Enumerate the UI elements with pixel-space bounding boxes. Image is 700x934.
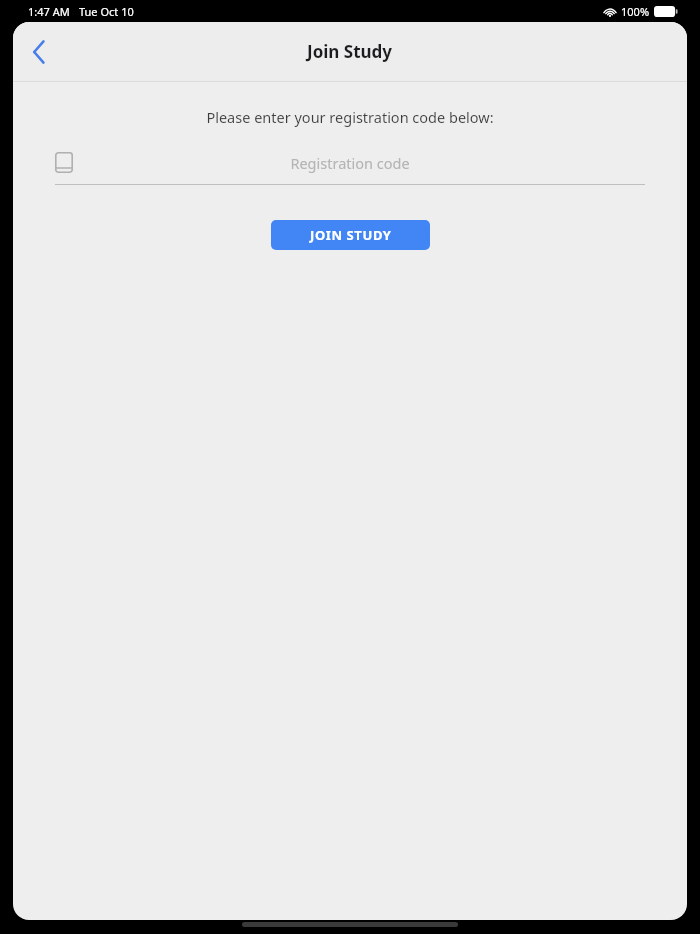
staticText: Please enter your registration code belo… (13, 107, 687, 127)
button[interactable]: Registration code (55, 152, 645, 173)
staticText: Tue Oct 10 (79, 4, 134, 19)
staticText: 1:47 AM (28, 4, 70, 19)
button[interactable]: JOIN STUDY (271, 220, 430, 250)
staticText: Join Study (307, 40, 393, 63)
staticText: 100% (621, 4, 650, 19)
staticText: JOIN STUDY (310, 226, 392, 244)
button[interactable]: Back (17, 30, 61, 74)
staticText: Registration code (73, 153, 627, 173)
